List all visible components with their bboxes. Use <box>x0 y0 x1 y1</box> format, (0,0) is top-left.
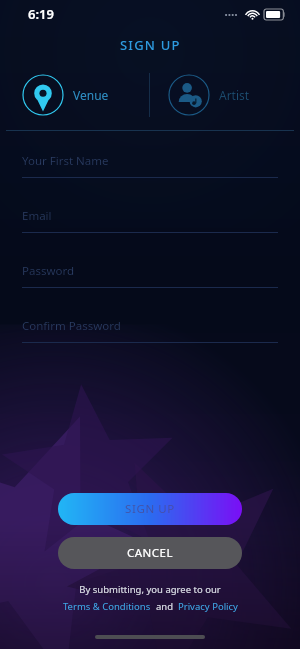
staticText: By submitting, you agree to our <box>79 583 221 596</box>
button[interactable]: CANCEL <box>58 537 242 569</box>
button[interactable]: SIGN UP <box>58 493 242 525</box>
staticText: Confirm Password <box>22 318 121 334</box>
staticText: Your First Name <box>22 153 109 169</box>
staticText: 6:19 <box>28 5 54 23</box>
staticText: Password <box>22 263 75 279</box>
button[interactable]: Venue <box>0 74 149 116</box>
staticText: SIGN UP <box>120 36 181 54</box>
staticText: Artist <box>219 87 250 103</box>
staticText: Venue <box>73 87 109 103</box>
staticText: CANCEL <box>127 545 174 561</box>
staticText: and <box>151 600 178 613</box>
button[interactable]: Your First Name <box>22 153 278 178</box>
button[interactable]: Artist <box>150 74 300 116</box>
button[interactable]: Confirm Password <box>22 318 278 343</box>
staticText: Terms & Conditions <box>63 600 151 613</box>
staticText: SIGN UP <box>125 501 175 517</box>
button[interactable]: Password <box>22 263 278 288</box>
staticText: Email <box>22 208 52 224</box>
button[interactable]: Privacy Policy <box>178 600 238 613</box>
button[interactable]: Email <box>22 208 278 233</box>
button[interactable]: Terms & Conditions <box>63 600 151 613</box>
staticText: Privacy Policy <box>178 600 238 613</box>
